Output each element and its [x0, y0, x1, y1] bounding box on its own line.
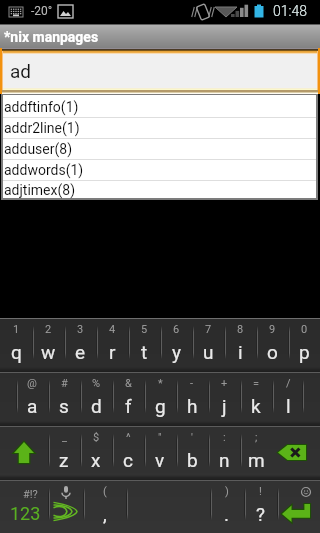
staticText: ad: [10, 60, 32, 82]
button[interactable]: =: [240, 373, 272, 426]
staticText: 5: [141, 323, 148, 336]
staticText: addwords(1): [4, 162, 84, 178]
staticText: !: [259, 485, 262, 498]
button[interactable]: adjtimex(8): [3, 181, 316, 198]
button[interactable]: /: [272, 373, 304, 426]
staticText: h: [187, 395, 198, 417]
staticText: 3: [77, 323, 84, 336]
button[interactable]: 5: [128, 319, 160, 372]
button[interactable]: :: [208, 427, 240, 480]
staticText: _: [62, 431, 67, 444]
button[interactable]: 0: [288, 319, 320, 372]
button[interactable]: (: [83, 481, 126, 533]
staticText: +: [221, 377, 228, 390]
button[interactable]: 1: [0, 319, 32, 372]
button[interactable]: Enter: [277, 481, 320, 533]
staticText: ): [225, 485, 229, 498]
button[interactable]: ad: [0, 48, 320, 94]
button[interactable]: Shift: [0, 427, 48, 480]
button[interactable]: #!?: [0, 481, 48, 533]
button[interactable]: 9: [256, 319, 288, 372]
staticText: ^: [126, 431, 131, 444]
button[interactable]: &: [112, 373, 144, 426]
staticText: ': [191, 431, 193, 444]
staticText: 7: [205, 323, 212, 336]
staticText: .: [224, 503, 230, 525]
staticText: ?: [256, 503, 265, 525]
button[interactable]: #: [48, 373, 80, 426]
staticText: #!?: [23, 488, 38, 501]
staticText: f: [125, 395, 132, 417]
staticText: x: [91, 449, 101, 471]
staticText: y: [172, 341, 181, 363]
staticText: g: [155, 395, 166, 417]
staticText: n: [219, 449, 230, 471]
staticText: 123: [10, 503, 41, 524]
button[interactable]: Space: [126, 481, 210, 533]
staticText: 9: [269, 323, 276, 336]
staticText: 2: [45, 323, 52, 336]
staticText: ,: [103, 503, 107, 525]
staticText: j: [222, 395, 227, 417]
staticText: ": [158, 431, 162, 444]
button[interactable]: ^: [112, 427, 144, 480]
button[interactable]: Delete: [272, 427, 320, 480]
staticText: s: [59, 395, 69, 417]
staticText: t: [141, 341, 148, 363]
staticText: e: [75, 341, 86, 363]
staticText: %: [92, 377, 101, 390]
button[interactable]: 7: [192, 319, 224, 372]
staticText: b: [187, 449, 198, 471]
button[interactable]: addwords(1): [3, 160, 316, 180]
staticText: $: [93, 431, 100, 444]
staticText: 4: [109, 323, 116, 336]
staticText: -: [190, 377, 194, 390]
staticText: l: [286, 395, 291, 417]
staticText: adjtimex(8): [4, 182, 76, 198]
staticText: *: [158, 377, 163, 390]
staticText: 8: [237, 323, 244, 336]
staticText: -20°: [31, 4, 53, 18]
button[interactable]: +: [208, 373, 240, 426]
button[interactable]: 2: [32, 319, 64, 372]
button[interactable]: $: [80, 427, 112, 480]
button[interactable]: ': [176, 427, 208, 480]
button[interactable]: addr2line(1): [3, 118, 316, 138]
button[interactable]: 6: [160, 319, 192, 372]
staticText: addr2line(1): [4, 120, 80, 136]
button[interactable]: -: [176, 373, 208, 426]
button[interactable]: _: [48, 427, 80, 480]
staticText: &: [125, 377, 132, 390]
staticText: addftinfo(1): [4, 99, 79, 115]
staticText: d: [91, 395, 102, 417]
button[interactable]: adduser(8): [3, 139, 316, 159]
button[interactable]: %: [80, 373, 112, 426]
staticText: w: [41, 341, 56, 363]
staticText: p: [299, 341, 310, 363]
staticText: u: [203, 341, 214, 363]
staticText: *nix manpages: [4, 29, 99, 45]
button[interactable]: ": [144, 427, 176, 480]
button[interactable]: ;: [240, 427, 272, 480]
button[interactable]: addftinfo(1): [3, 97, 316, 117]
staticText: 6: [173, 323, 180, 336]
button[interactable]: @: [16, 373, 48, 426]
staticText: :: [223, 431, 226, 444]
staticText: ;: [255, 431, 258, 444]
button[interactable]: Voice input: [48, 481, 83, 533]
staticText: v: [155, 449, 165, 471]
staticText: 1: [13, 323, 20, 336]
button[interactable]: !: [244, 481, 277, 533]
staticText: @: [27, 377, 37, 390]
staticText: m: [248, 449, 265, 471]
staticText: 01:48: [273, 3, 308, 19]
button[interactable]: 4: [96, 319, 128, 372]
button[interactable]: 3: [64, 319, 96, 372]
staticText: i: [238, 341, 243, 363]
staticText: /: [286, 377, 291, 390]
button[interactable]: 8: [224, 319, 256, 372]
staticText: k: [251, 395, 261, 417]
staticText: 0: [301, 323, 308, 336]
button[interactable]: *: [144, 373, 176, 426]
button[interactable]: ): [210, 481, 244, 533]
